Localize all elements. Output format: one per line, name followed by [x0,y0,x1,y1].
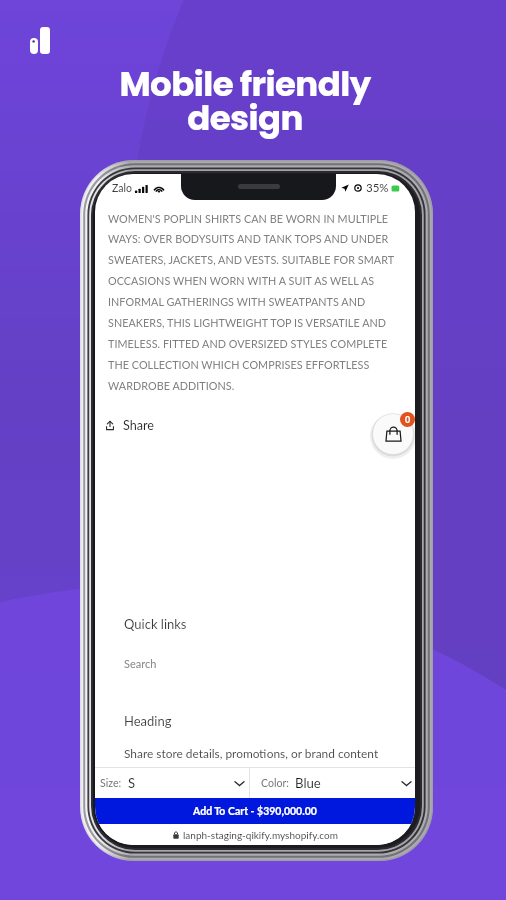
staticText: Size: [100,777,122,790]
staticText: Blue [295,775,321,791]
staticText: lanph-staging-qikify.myshopify.com [183,829,338,841]
staticText: Add To Cart - $390,000.00 [193,805,317,818]
button[interactable]: Color: [250,775,415,791]
staticText: 35% [366,181,389,195]
staticText: 0 [405,414,411,425]
staticText: Color: [261,777,289,790]
staticText: Quick links [124,616,187,632]
staticText: WOMEN'S POPLIN SHIRTS CAN BE WORN IN MUL… [108,212,398,393]
staticText: Heading [124,713,172,729]
button[interactable]: Add To Cart - $390,000.00 [95,798,415,824]
button[interactable]: Size: [95,775,249,791]
button[interactable]: Share [102,413,158,438]
button[interactable]: Cart [373,414,413,454]
staticText: Search [124,657,157,670]
staticText: Share store details, promotions, or bran… [124,746,379,760]
staticText: Zalo [112,182,132,195]
staticText: S [128,775,136,791]
staticText: Mobile friendly design [0,60,498,142]
staticText: Share [123,418,154,433]
